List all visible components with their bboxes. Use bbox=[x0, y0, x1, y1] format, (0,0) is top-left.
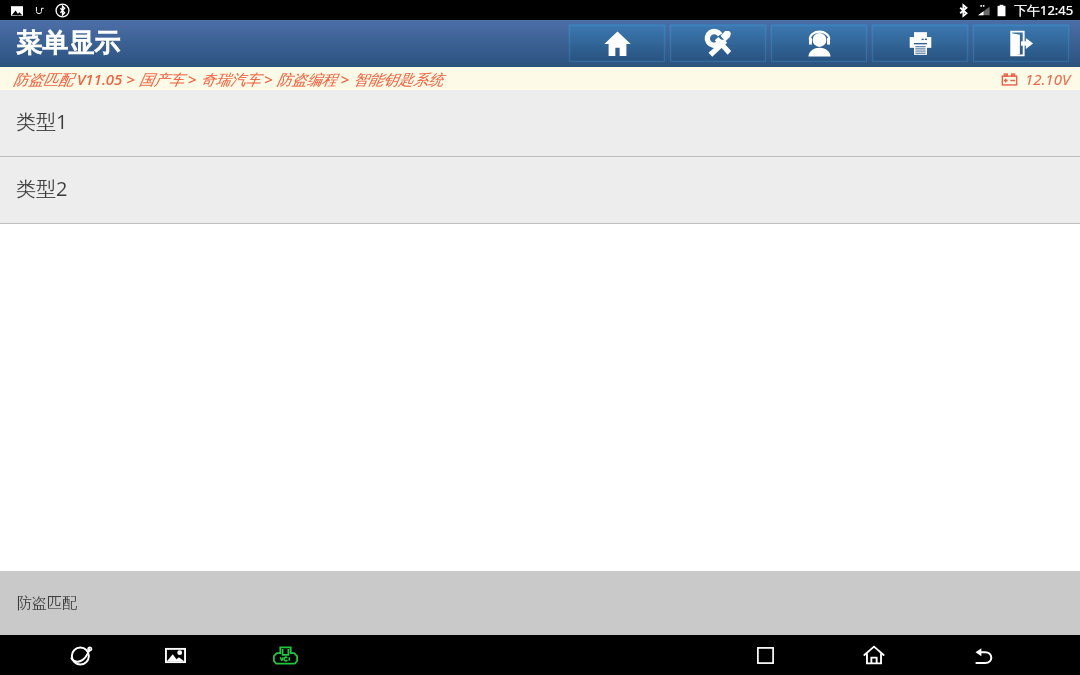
staticText: 类型2 bbox=[16, 175, 68, 202]
staticText: 类型1 bbox=[16, 108, 68, 135]
button[interactable]: 类型2 bbox=[0, 157, 1080, 223]
button[interactable]: Print bbox=[871, 24, 969, 63]
staticText: 12.10V bbox=[1025, 69, 1071, 89]
button[interactable]: Browser bbox=[59, 635, 103, 675]
button[interactable]: Home bbox=[852, 635, 896, 675]
button[interactable]: Back bbox=[961, 635, 1005, 675]
button[interactable]: 类型1 bbox=[0, 90, 1080, 156]
button[interactable]: Home bbox=[568, 24, 666, 63]
staticText: 防盗匹配 V11.05 > 国产车 > 奇瑞汽车 > 防盗编程 > 智能钥匙系统 bbox=[13, 69, 443, 89]
button[interactable]: Gallery bbox=[153, 635, 197, 675]
staticText: 下午12:45 bbox=[1014, 1, 1074, 19]
staticText: 防盗匹配 bbox=[17, 594, 77, 613]
button[interactable]: Support bbox=[770, 24, 868, 63]
button[interactable]: Recents bbox=[743, 635, 787, 675]
button[interactable]: Diagnose bbox=[669, 24, 767, 63]
staticText: 菜单显示 bbox=[16, 27, 120, 60]
button[interactable]: Exit bbox=[972, 24, 1070, 63]
button[interactable]: VCI bbox=[263, 635, 307, 675]
